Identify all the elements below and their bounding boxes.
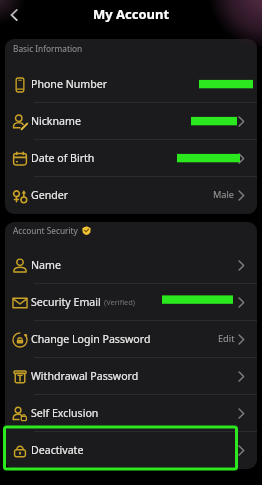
staticText: Account Security	[13, 225, 78, 236]
button[interactable]: Self Exclusion	[5, 395, 257, 432]
staticText: Name	[31, 258, 61, 272]
button[interactable]: Nickname	[5, 103, 257, 140]
button[interactable]: Security Email	[5, 284, 257, 321]
staticText: Phone Number	[31, 77, 108, 91]
staticText: (Verified)	[104, 297, 136, 307]
button[interactable]: Deactivate	[5, 432, 257, 469]
staticText: Deactivate	[31, 443, 84, 457]
staticText: Change Login Password	[31, 332, 151, 346]
staticText: Date of Birth	[31, 151, 95, 165]
staticText: Gender	[31, 188, 69, 202]
staticText: Basic Information	[13, 43, 83, 54]
staticText: Security Email	[31, 295, 101, 309]
button[interactable]: Date of Birth	[5, 140, 257, 177]
button[interactable]: Phone Number	[5, 66, 257, 103]
staticText: Nickname	[31, 114, 81, 128]
button[interactable]: Back	[3, 4, 25, 26]
button[interactable]: Name	[5, 247, 257, 284]
button[interactable]: Change Login Password	[5, 321, 257, 358]
staticText: Male	[213, 188, 235, 201]
button[interactable]: Withdrawal Password	[5, 358, 257, 395]
button[interactable]: Gender	[5, 177, 257, 214]
staticText: My Account	[93, 5, 170, 23]
staticText: Withdrawal Password	[31, 369, 139, 383]
staticText: Self Exclusion	[31, 406, 99, 420]
staticText: Edit	[218, 332, 235, 345]
